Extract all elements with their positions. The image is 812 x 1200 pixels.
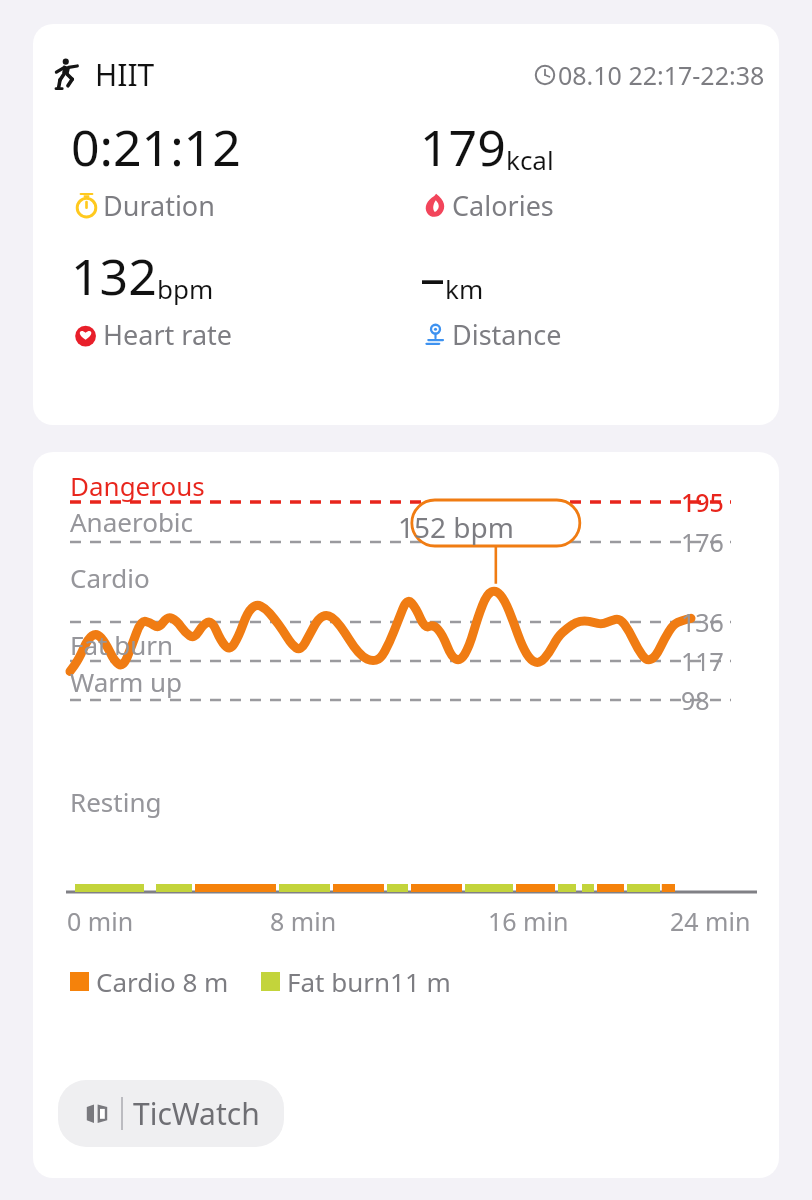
staticText: Fat burn bbox=[70, 627, 174, 662]
staticText: Heart rate bbox=[103, 316, 233, 353]
staticText: Warm up bbox=[70, 664, 183, 699]
staticText: 117 bbox=[681, 644, 724, 678]
button[interactable]: 0:21:12 bbox=[71, 113, 241, 224]
staticText: km bbox=[445, 271, 484, 306]
staticText: 8 min bbox=[270, 904, 337, 938]
staticText: 136 bbox=[681, 605, 724, 639]
button[interactable]: Cardio 8 m bbox=[70, 964, 451, 999]
button[interactable]: TicWatch source bbox=[58, 1080, 284, 1147]
staticText: Distance bbox=[452, 316, 562, 353]
staticText: 08.10 22:17-22:38 bbox=[558, 58, 765, 92]
staticText: kcal bbox=[506, 142, 554, 177]
button[interactable]: 179 bbox=[420, 113, 554, 224]
staticText: 179 bbox=[420, 113, 506, 181]
staticText: 176 bbox=[681, 525, 724, 559]
staticText: Fat burn11 m bbox=[287, 964, 451, 999]
staticText: Resting bbox=[70, 784, 162, 819]
staticText: 98 bbox=[681, 683, 710, 717]
staticText: 0 min bbox=[67, 904, 134, 938]
staticText: bpm bbox=[157, 271, 214, 306]
button[interactable]: 132 bbox=[71, 242, 233, 353]
staticText: Cardio 8 m bbox=[96, 964, 229, 999]
staticText: 16 min bbox=[488, 904, 569, 938]
staticText: – bbox=[420, 242, 445, 310]
button[interactable]: – bbox=[420, 242, 562, 353]
staticText: HIIT bbox=[95, 54, 155, 95]
staticText: Dangerous bbox=[70, 468, 205, 503]
staticText: Calories bbox=[452, 187, 554, 224]
staticText: Duration bbox=[103, 187, 215, 224]
staticText: 0:21:12 bbox=[71, 113, 241, 181]
staticText: 132 bbox=[71, 242, 157, 310]
staticText: Anaerobic bbox=[70, 504, 194, 539]
staticText: Cardio bbox=[70, 560, 150, 595]
staticText: TicWatch bbox=[133, 1093, 260, 1134]
staticText: 195 bbox=[681, 485, 724, 519]
staticText: 152 bpm bbox=[398, 508, 514, 546]
staticText: 24 min bbox=[670, 904, 751, 938]
